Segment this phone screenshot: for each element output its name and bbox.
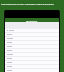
button[interactable] — [5, 53, 59, 57]
button[interactable] — [5, 33, 59, 37]
button[interactable] — [5, 41, 59, 45]
button[interactable] — [5, 49, 59, 53]
button[interactable] — [5, 61, 59, 65]
button[interactable] — [5, 65, 59, 69]
staticText: Bookshelf — [26, 19, 38, 22]
button[interactable] — [5, 57, 59, 61]
button[interactable] — [5, 69, 59, 72]
button[interactable] — [5, 45, 59, 49]
staticText: The Bookshop is your complete online boo… — [1, 3, 64, 6]
button[interactable] — [5, 37, 59, 41]
button[interactable] — [5, 29, 59, 33]
